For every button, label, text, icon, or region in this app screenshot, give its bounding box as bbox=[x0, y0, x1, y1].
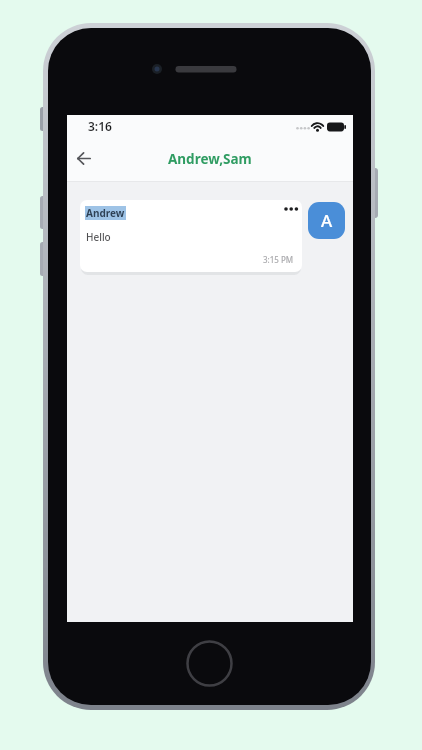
button[interactable] bbox=[284, 207, 298, 211]
staticText: Andrew bbox=[86, 206, 125, 220]
staticText: 3:15 PM bbox=[263, 254, 294, 265]
staticText: Andrew,Sam bbox=[168, 150, 252, 168]
button[interactable]: A bbox=[308, 202, 345, 239]
button[interactable] bbox=[77, 152, 91, 165]
button[interactable]: Andrew bbox=[80, 200, 302, 272]
staticText: A bbox=[321, 209, 333, 232]
staticText: Hello bbox=[86, 230, 111, 244]
staticText: 3:16 bbox=[88, 118, 112, 134]
